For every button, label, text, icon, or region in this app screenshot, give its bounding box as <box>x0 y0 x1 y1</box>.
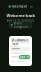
staticText: Remember <box>11 56 19 58</box>
staticText: Welcome back <box>6 13 34 18</box>
button[interactable]: Sign in <box>19 55 30 59</box>
staticText: Secure encryption <box>14 21 29 29</box>
staticText: you@example.com <box>12 38 29 46</box>
staticText: Sign in <box>19 55 29 59</box>
staticText: EN <box>29 5 32 8</box>
staticText: Password <box>11 45 19 47</box>
staticText: Forgot password? <box>11 52 25 54</box>
button[interactable]: Language <box>29 5 32 8</box>
staticText: •••••••• <box>12 47 20 51</box>
staticText: No account? Sign up <box>11 60 25 62</box>
staticText: Email <box>11 38 14 40</box>
staticText: Sign in to continue <box>6 19 34 22</box>
staticText: GreenLeaf <box>12 5 27 8</box>
button[interactable]: GreenLeaf <box>8 5 27 8</box>
